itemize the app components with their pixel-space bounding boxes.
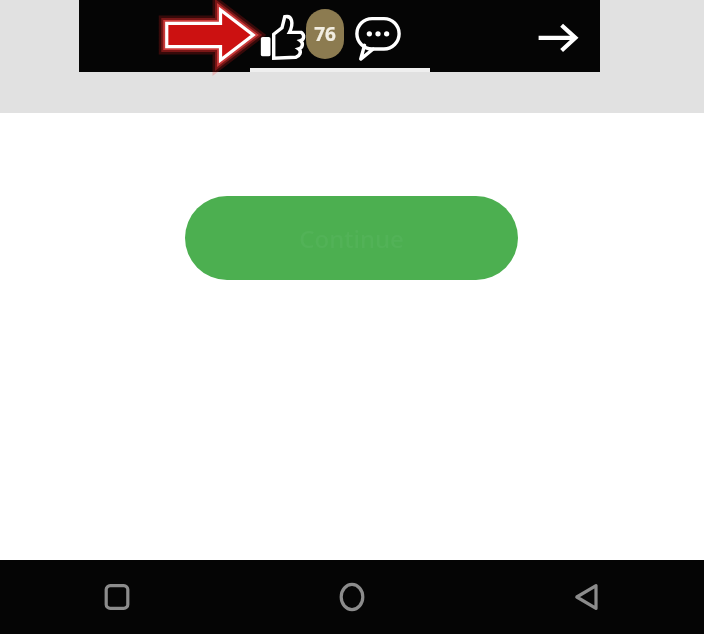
button[interactable]: Comments: [354, 14, 402, 60]
button[interactable]: Recent apps: [0, 560, 234, 634]
button[interactable]: Continue: [185, 196, 518, 280]
button[interactable]: Like: [259, 14, 305, 60]
button[interactable]: 76: [306, 9, 344, 59]
button[interactable]: Next: [161, 6, 257, 64]
button[interactable]: Back: [469, 560, 704, 634]
button[interactable]: Forward: [534, 16, 580, 58]
staticText: 76: [314, 21, 336, 47]
button[interactable]: Home: [234, 560, 469, 634]
